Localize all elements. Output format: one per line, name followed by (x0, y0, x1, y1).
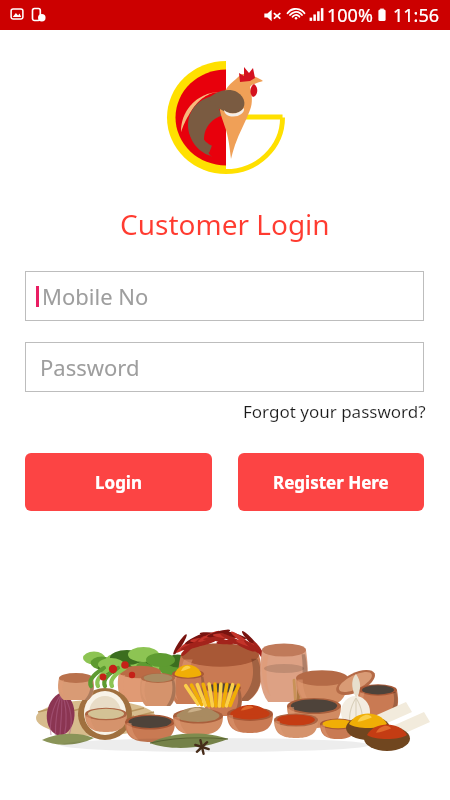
button[interactable]: Forgot your password? (243, 400, 426, 423)
staticText: Login (95, 471, 143, 494)
staticText: Register Here (273, 471, 389, 494)
staticText: Customer Login (120, 205, 330, 243)
button[interactable]: Login (25, 453, 212, 511)
staticText: 11:56 (393, 3, 440, 28)
staticText: Password (40, 352, 140, 382)
staticText: 100% (327, 3, 373, 28)
button[interactable]: Mobile No (25, 271, 424, 321)
button[interactable]: Register Here (238, 453, 424, 511)
staticText: Mobile No (42, 281, 149, 311)
button[interactable]: Password (25, 342, 424, 392)
